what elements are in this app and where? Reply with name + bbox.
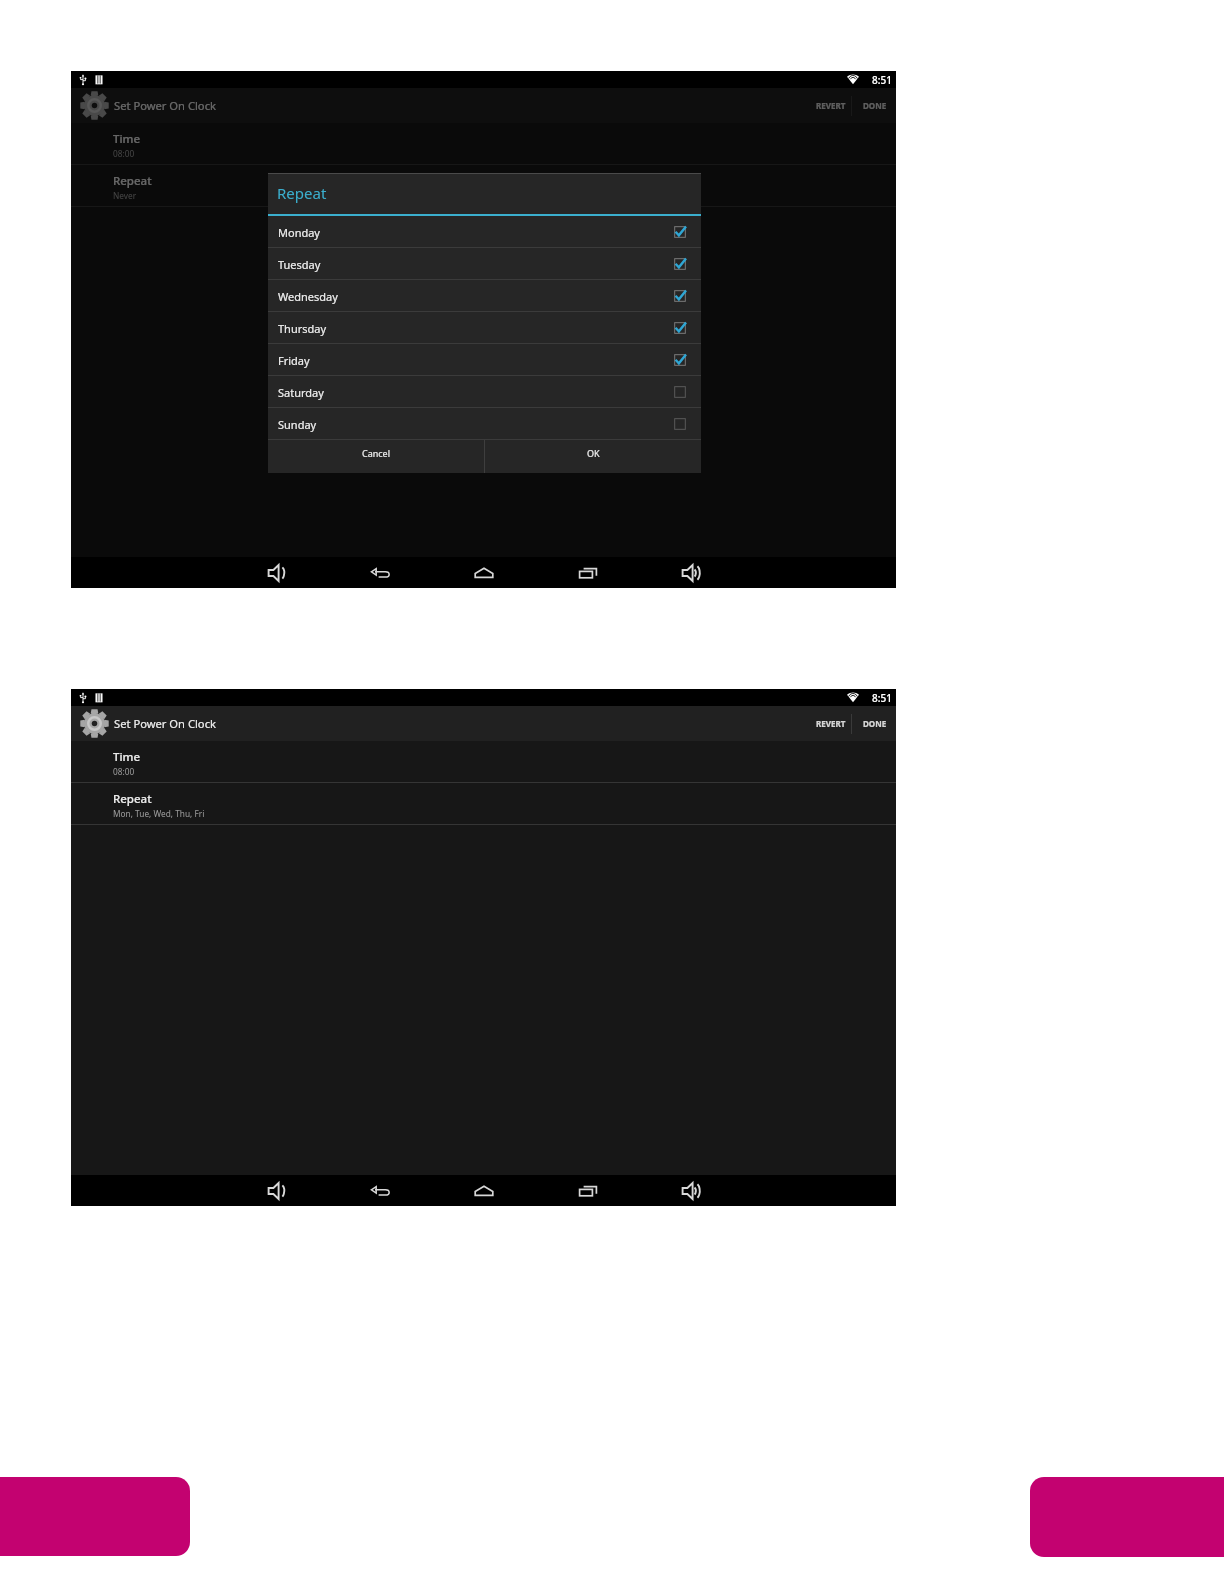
button[interactable]: Set Power On Clock <box>71 88 224 123</box>
staticText: Wednesday <box>278 289 338 304</box>
staticText: 8:51 <box>872 691 892 705</box>
button[interactable]: Volume up <box>675 557 706 588</box>
staticText: Set Power On Clock <box>114 716 216 731</box>
button[interactable]: Time <box>71 123 896 165</box>
staticText: Friday <box>278 353 310 368</box>
staticText: Repeat <box>113 173 152 189</box>
staticText: REVERT <box>816 100 846 111</box>
button[interactable]: Set Power On Clock <box>71 706 224 741</box>
button[interactable]: Tuesday <box>268 248 701 280</box>
staticText: REVERT <box>816 718 846 729</box>
staticText: Time <box>113 749 141 765</box>
button[interactable]: Volume up <box>675 1175 706 1206</box>
staticText: Thursday <box>278 321 327 336</box>
button[interactable]: Saturday <box>268 376 701 408</box>
button[interactable]: Recent apps <box>572 1175 603 1206</box>
button[interactable]: Back <box>365 557 396 588</box>
staticText: 08:00 <box>113 148 135 159</box>
button[interactable]: Monday <box>268 216 701 248</box>
staticText: Cancel <box>362 447 391 459</box>
staticText: Tuesday <box>278 257 321 272</box>
staticText: DONE <box>863 718 887 729</box>
staticText: OK <box>587 447 600 459</box>
staticText: Repeat <box>277 183 327 203</box>
button[interactable]: Recent apps <box>572 557 603 588</box>
button[interactable]: Friday <box>268 344 701 376</box>
button[interactable]: REVERT <box>803 706 851 741</box>
staticText: Repeat <box>113 791 152 807</box>
staticText: Never <box>113 190 137 201</box>
button[interactable]: DONE <box>852 706 896 741</box>
staticText: 08:00 <box>113 766 135 777</box>
button[interactable]: Volume down <box>261 1175 292 1206</box>
button[interactable]: Time <box>71 741 896 783</box>
button[interactable]: Back <box>365 1175 396 1206</box>
staticText: Mon, Tue, Wed, Thu, Fri <box>113 808 205 819</box>
button[interactable]: Thursday <box>268 312 701 344</box>
button[interactable]: Volume down <box>261 557 292 588</box>
staticText: Monday <box>278 225 320 240</box>
button[interactable]: Home <box>468 557 499 588</box>
button[interactable]: Repeat <box>71 165 896 207</box>
button[interactable]: Wednesday <box>268 280 701 312</box>
staticText: 8:51 <box>872 73 892 87</box>
button[interactable]: Home <box>468 1175 499 1206</box>
button[interactable]: Sunday <box>268 408 701 440</box>
button[interactable]: REVERT <box>803 88 851 123</box>
button[interactable]: Repeat <box>71 783 896 825</box>
staticText: Saturday <box>278 385 324 400</box>
staticText: Sunday <box>278 417 317 432</box>
button[interactable]: OK <box>485 440 701 473</box>
staticText: Time <box>113 131 141 147</box>
button[interactable]: DONE <box>852 88 896 123</box>
staticText: DONE <box>863 100 887 111</box>
staticText: Set Power On Clock <box>114 98 216 113</box>
button[interactable]: Cancel <box>268 440 484 473</box>
